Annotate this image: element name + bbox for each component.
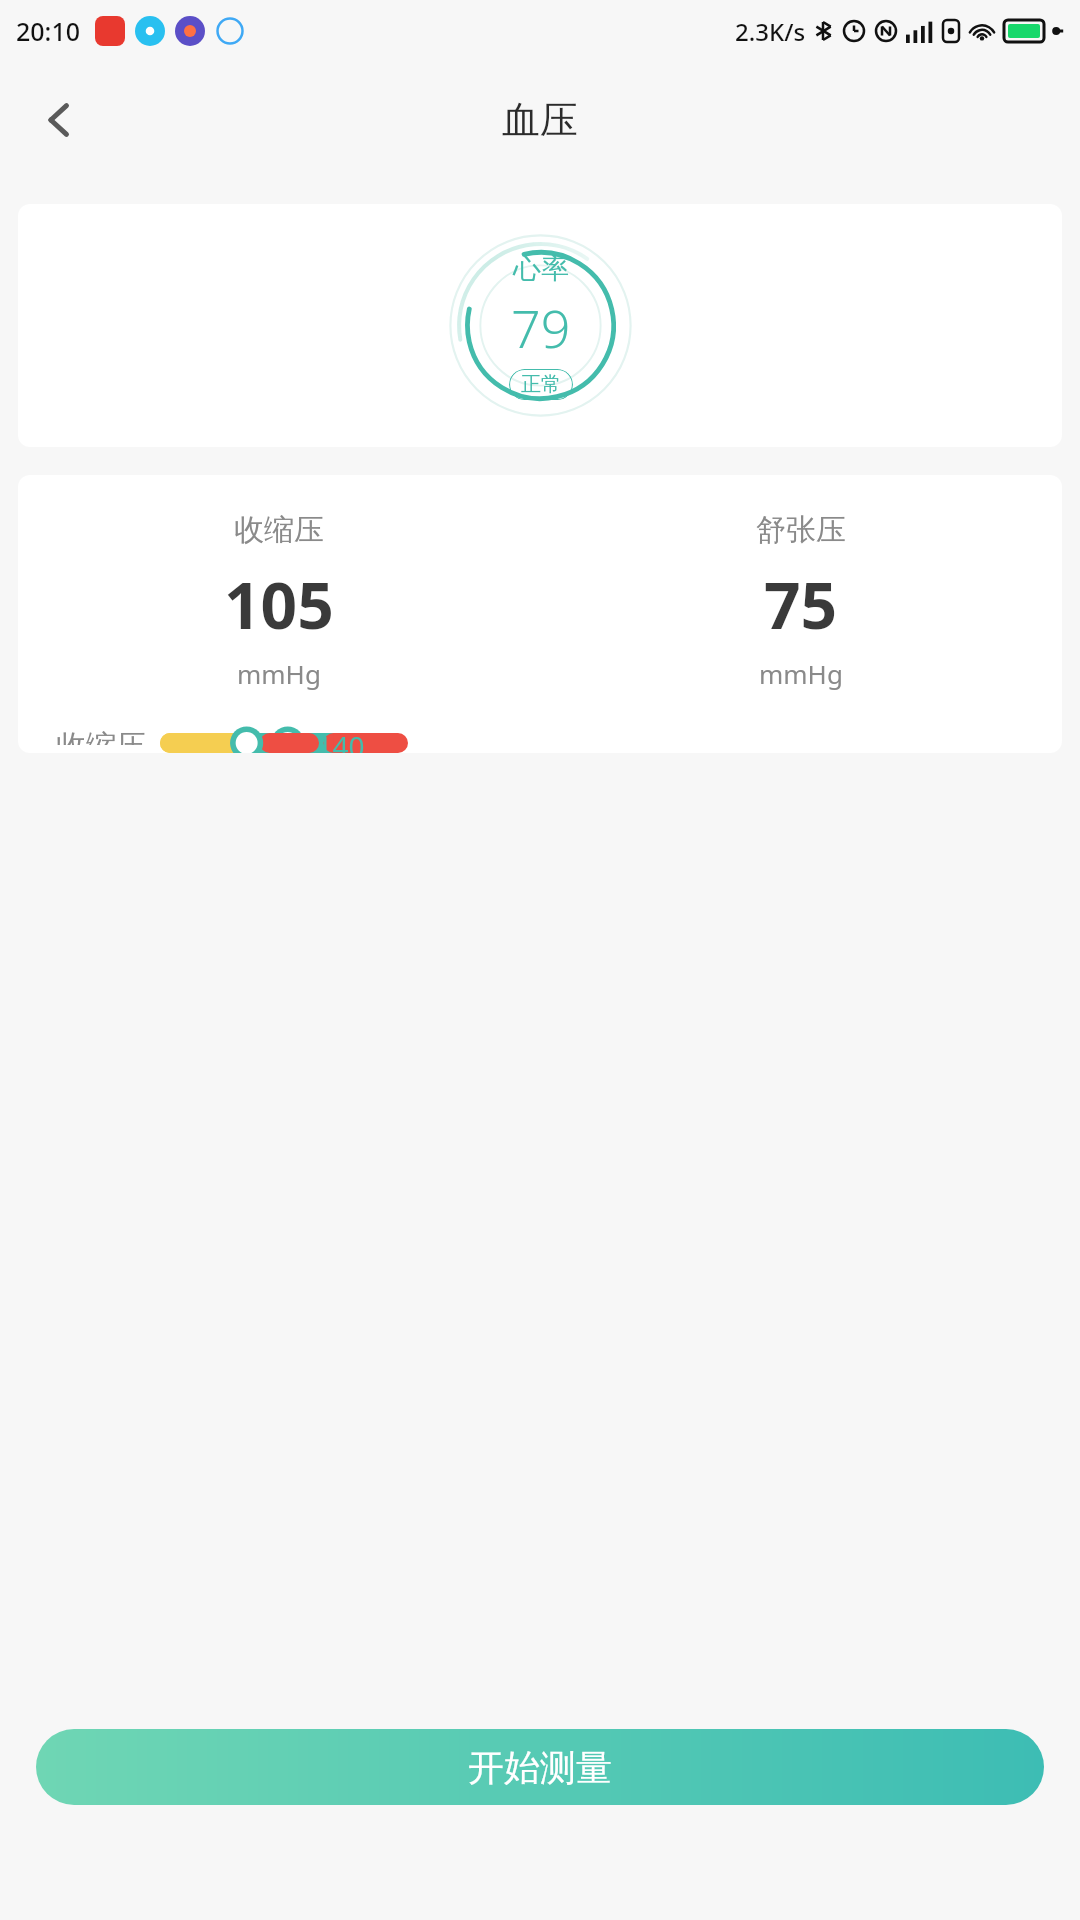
button[interactable]: 开始测量 bbox=[36, 1729, 1044, 1805]
staticText: 105 bbox=[224, 561, 334, 648]
staticText: 舒张压 bbox=[756, 511, 846, 549]
staticText: mmHg bbox=[237, 656, 321, 691]
staticText: 20:10 bbox=[16, 14, 81, 48]
staticText: 收缩压 bbox=[56, 727, 146, 745]
staticText: 90 bbox=[255, 727, 288, 753]
button[interactable]: 心率 bbox=[18, 204, 1062, 447]
staticText: 140 bbox=[316, 727, 365, 753]
staticText: 血压 bbox=[502, 96, 578, 144]
staticText: 心率 bbox=[513, 251, 569, 286]
staticText: 正常 bbox=[521, 372, 561, 397]
staticText: 75 bbox=[764, 561, 838, 648]
button[interactable]: Back bbox=[28, 89, 90, 151]
staticText: 收缩压 bbox=[234, 511, 324, 549]
staticText: 开始测量 bbox=[468, 1745, 612, 1790]
staticText: 2.3K/s bbox=[735, 15, 806, 48]
staticText: 79 bbox=[511, 292, 571, 363]
button[interactable]: 收缩压 bbox=[18, 475, 1062, 753]
staticText: mmHg bbox=[759, 656, 843, 691]
